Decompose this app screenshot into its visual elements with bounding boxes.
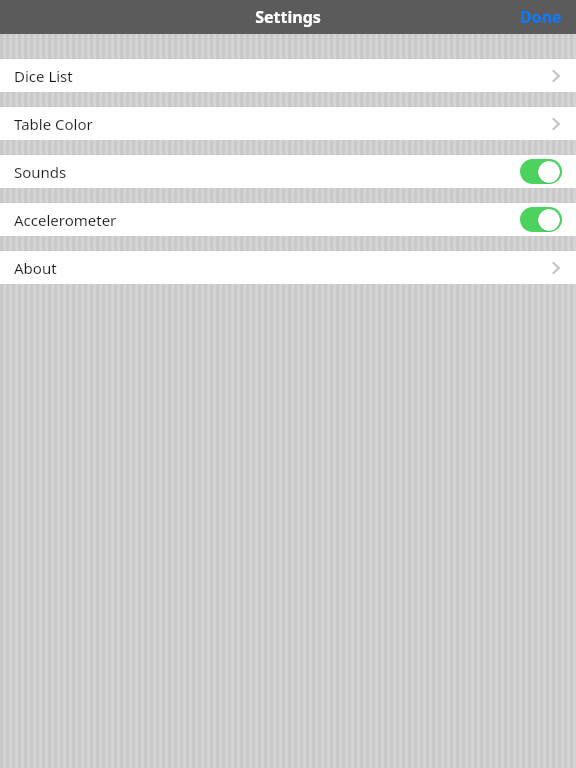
other: Open: [552, 260, 562, 276]
other: Open: [552, 68, 562, 84]
staticText: Accelerometer: [14, 210, 117, 230]
staticText: Sounds: [14, 162, 67, 182]
staticText: Done: [520, 6, 562, 28]
staticText: Table Color: [14, 114, 93, 134]
button[interactable]: Toggle on: [520, 207, 562, 232]
button[interactable]: Done: [506, 1, 576, 33]
other: Open: [552, 116, 562, 132]
button[interactable]: Toggle on: [520, 159, 562, 184]
staticText: Settings: [255, 6, 321, 28]
button[interactable]: Table Color: [0, 107, 576, 140]
button[interactable]: Sounds: [0, 155, 576, 188]
button[interactable]: About: [0, 251, 576, 284]
staticText: About: [14, 258, 57, 278]
button[interactable]: Accelerometer: [0, 203, 576, 236]
staticText: Dice List: [14, 66, 73, 86]
button[interactable]: Dice List: [0, 59, 576, 92]
